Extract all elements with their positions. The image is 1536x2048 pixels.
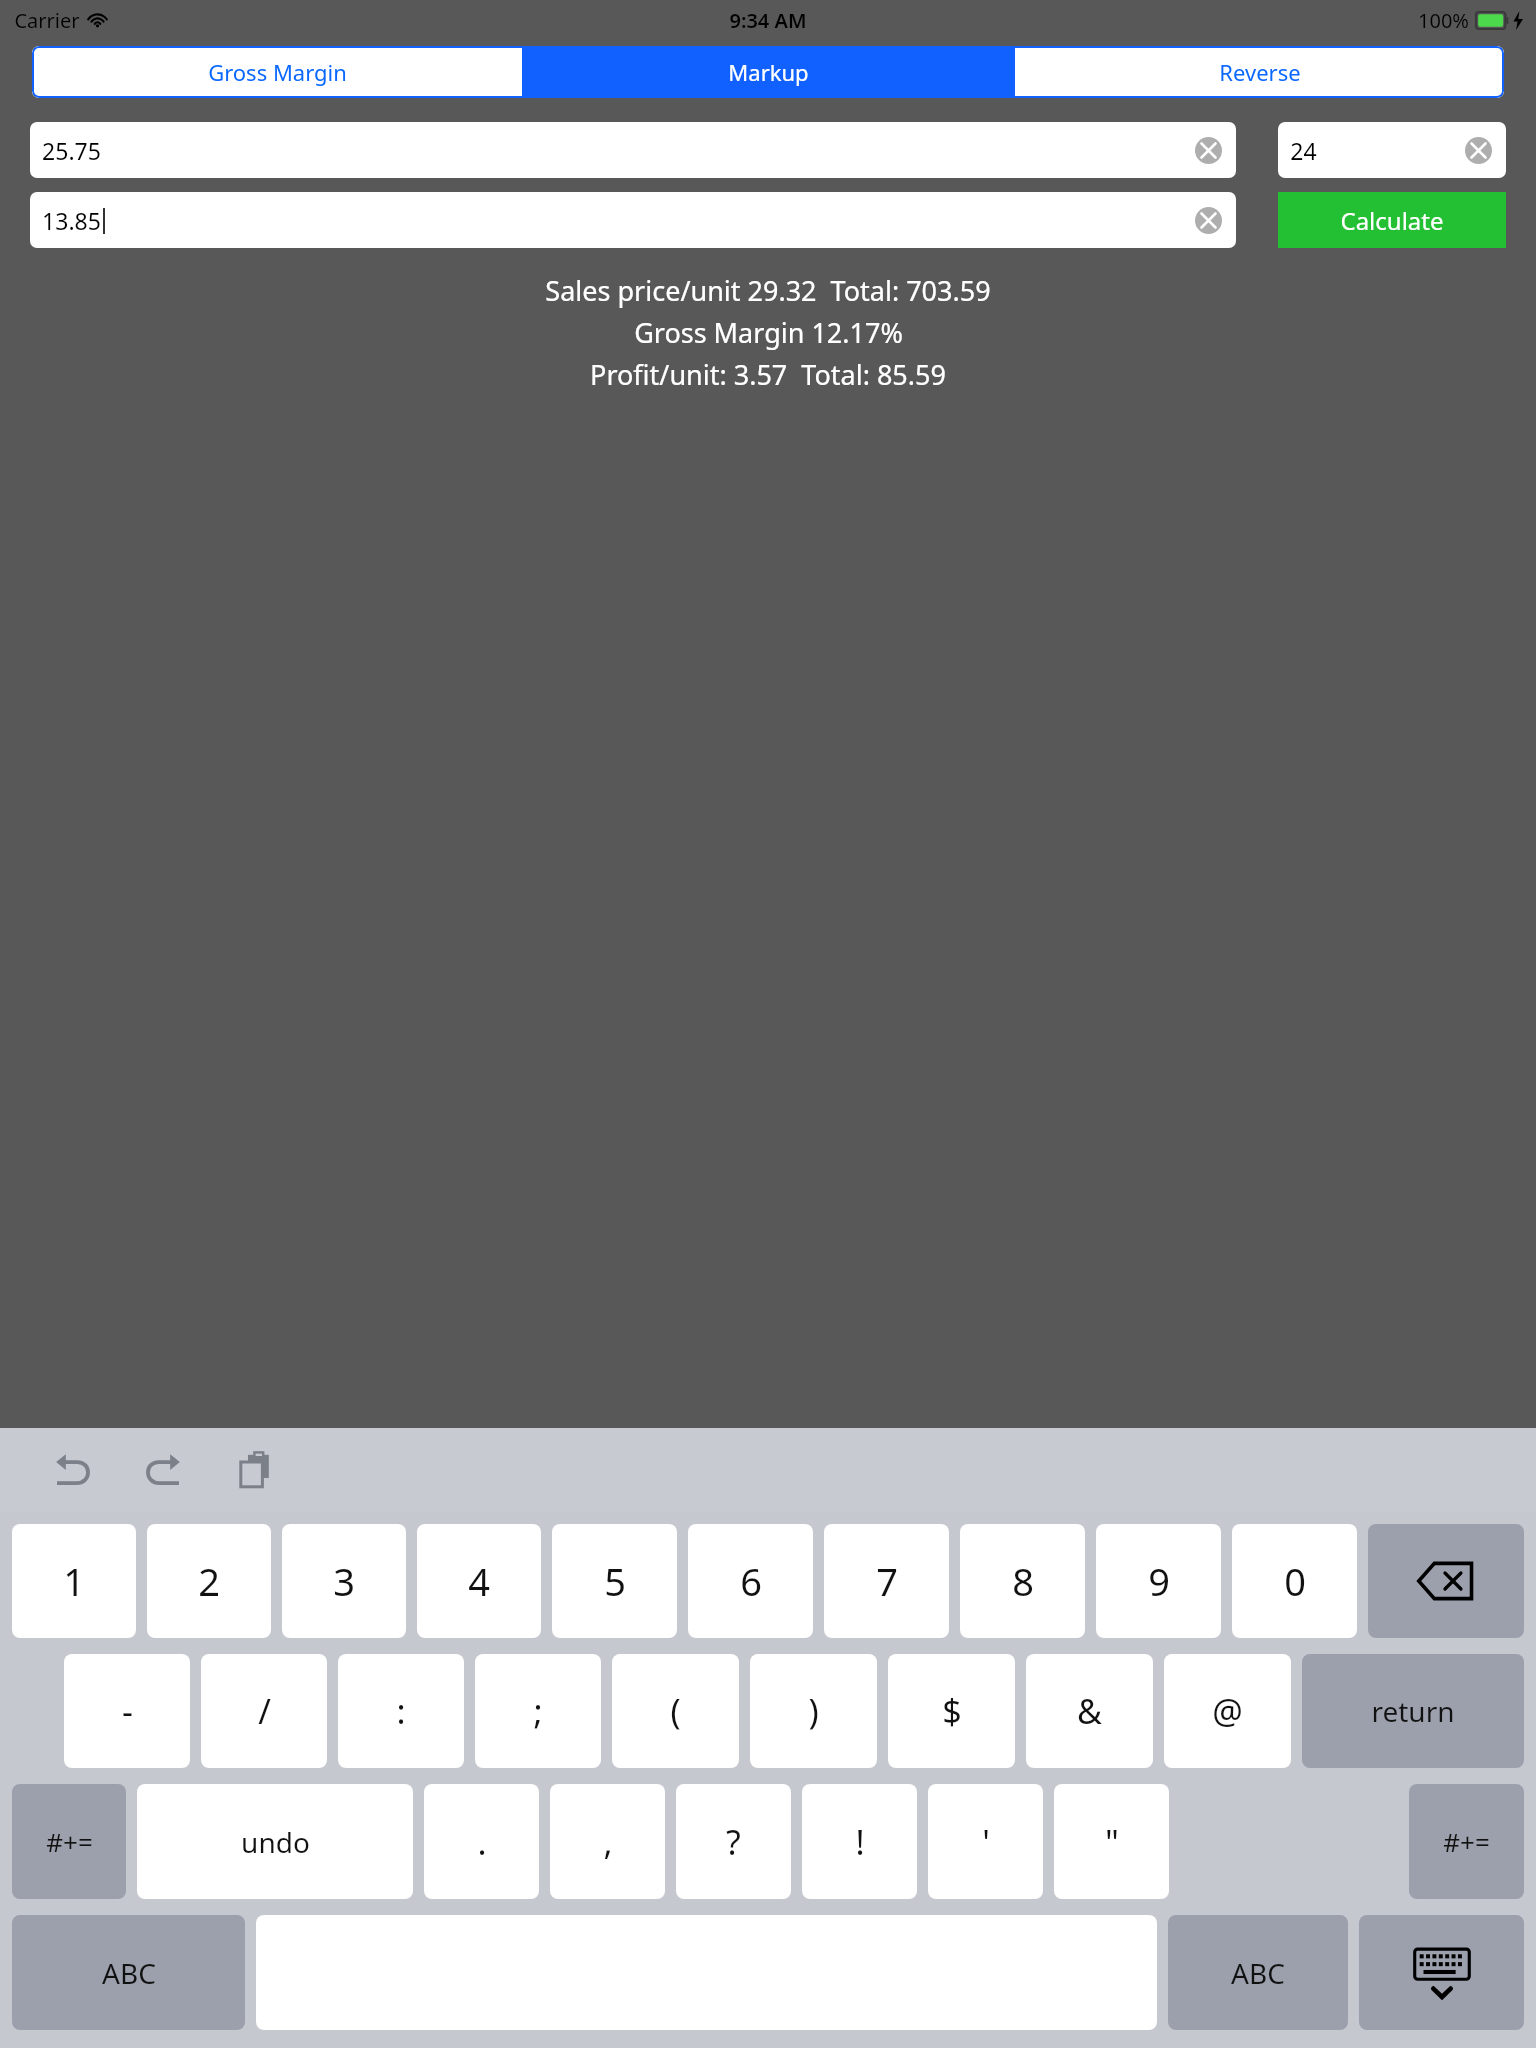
staticText: Gross Margin 12.17% (634, 314, 903, 351)
button[interactable]: $ (888, 1654, 1015, 1768)
button[interactable]: ? (676, 1784, 791, 1899)
staticText: 7 (876, 1555, 898, 1607)
button[interactable]: 25.75 (30, 122, 1236, 178)
button[interactable]: Hide keyboard (1359, 1915, 1524, 2030)
button[interactable]: ) (750, 1654, 877, 1768)
staticText: return (1371, 1692, 1455, 1730)
staticText: 9:34 AM (729, 7, 807, 34)
staticText: Sales price/unit 29.32 Total: 703.59 (545, 272, 991, 309)
staticText: , (603, 1819, 613, 1865)
button[interactable]: Markup (524, 46, 1013, 98)
button[interactable]: 8 (960, 1524, 1085, 1638)
staticText: ABC (102, 1954, 156, 1992)
staticText: 4 (468, 1555, 490, 1607)
button[interactable]: 3 (282, 1524, 406, 1638)
staticText: #+= (1443, 1824, 1490, 1859)
button[interactable]: 4 (417, 1524, 541, 1638)
staticText: 6 (740, 1555, 762, 1607)
button[interactable]: " (1054, 1784, 1169, 1899)
staticText: 0 (1284, 1555, 1306, 1607)
button[interactable]: #+= (1409, 1784, 1524, 1899)
button[interactable]: ABC (12, 1915, 245, 2030)
button[interactable]: 5 (552, 1524, 677, 1638)
staticText: Gross Margin (208, 57, 347, 87)
button[interactable]: return (1302, 1654, 1524, 1768)
button[interactable]: 7 (824, 1524, 949, 1638)
button[interactable]: ( (612, 1654, 739, 1768)
button[interactable]: Undo (44, 1442, 100, 1498)
staticText: . (477, 1819, 487, 1865)
button[interactable]: / (201, 1654, 327, 1768)
staticText: @ (1212, 1688, 1243, 1734)
staticText: ( (670, 1688, 681, 1734)
staticText: $ (942, 1688, 962, 1734)
button[interactable]: 9 (1096, 1524, 1221, 1638)
button[interactable]: Clear text (1195, 137, 1222, 164)
staticText: / (258, 1688, 271, 1734)
staticText: 25.75 (42, 135, 101, 166)
staticText: Calculate (1340, 204, 1444, 237)
staticText: 2 (198, 1555, 220, 1607)
button[interactable]: ; (475, 1654, 601, 1768)
staticText: Carrier (14, 7, 80, 34)
staticText: Reverse (1219, 57, 1301, 87)
staticText: ) (808, 1688, 819, 1734)
button[interactable]: Clear text (1195, 207, 1222, 234)
button[interactable]: . (424, 1784, 539, 1899)
button[interactable]: - (64, 1654, 190, 1768)
button[interactable]: @ (1164, 1654, 1291, 1768)
button[interactable]: 0 (1232, 1524, 1357, 1638)
button[interactable]: & (1026, 1654, 1153, 1768)
button[interactable]: Paste (228, 1442, 284, 1498)
button[interactable]: ABC (1168, 1915, 1348, 2030)
staticText: undo (241, 1823, 310, 1861)
button[interactable]: 2 (147, 1524, 271, 1638)
staticText: 3 (333, 1555, 355, 1607)
staticText: ' (982, 1819, 990, 1865)
staticText: & (1077, 1688, 1102, 1734)
button[interactable]: Clear text (1465, 137, 1492, 164)
button[interactable]: 1 (12, 1524, 136, 1638)
staticText: ABC (1231, 1954, 1285, 1992)
staticText: 5 (604, 1555, 626, 1607)
button[interactable]: undo (137, 1784, 413, 1899)
staticText: ! (855, 1819, 865, 1865)
button[interactable]: Reverse (1015, 46, 1504, 98)
button[interactable]: 6 (688, 1524, 813, 1638)
staticText: Profit/unit: 3.57 Total: 85.59 (590, 356, 946, 393)
staticText: 9 (1148, 1555, 1170, 1607)
staticText: : (396, 1688, 406, 1734)
staticText: Markup (728, 57, 809, 87)
button[interactable]: 24 (1278, 122, 1506, 178)
button[interactable]: Calculate (1278, 192, 1506, 248)
staticText: 1 (63, 1555, 85, 1607)
staticText: ? (726, 1819, 741, 1865)
staticText: ; (533, 1688, 543, 1734)
button[interactable]: , (550, 1784, 665, 1899)
staticText: 13.85 (42, 205, 101, 236)
button[interactable]: : (338, 1654, 464, 1768)
button[interactable]: Redo (136, 1442, 192, 1498)
button[interactable]: Backspace (1368, 1524, 1524, 1638)
button[interactable]: #+= (12, 1784, 126, 1899)
staticText: 24 (1290, 135, 1317, 166)
staticText: 8 (1012, 1555, 1034, 1607)
staticText: #+= (46, 1824, 93, 1859)
button[interactable]: ' (928, 1784, 1043, 1899)
staticText: - (122, 1688, 133, 1734)
staticText: " (1105, 1819, 1119, 1865)
button[interactable]: 13.85 (30, 192, 1236, 248)
staticText: 100% (1418, 7, 1469, 34)
button[interactable]: ! (802, 1784, 917, 1899)
button[interactable]: Gross Margin (32, 46, 522, 98)
